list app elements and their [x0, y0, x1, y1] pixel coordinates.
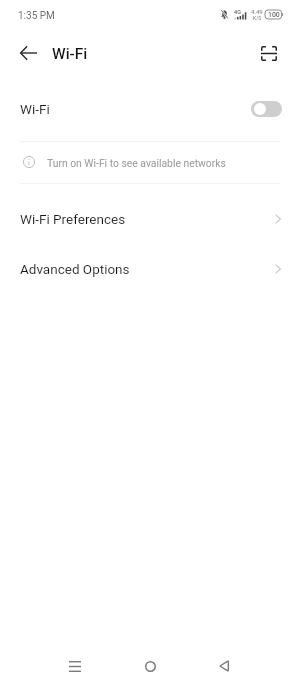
staticText: 100 — [268, 11, 280, 19]
staticText: Advanced Options — [20, 261, 130, 277]
button[interactable]: Back — [200, 642, 248, 683]
staticText: 4.49 — [251, 8, 263, 15]
button[interactable]: Back — [8, 33, 48, 73]
staticText: K/S — [253, 15, 262, 21]
button[interactable]: Wi-Fi — [0, 84, 300, 134]
staticText: Wi-Fi — [20, 101, 50, 117]
button[interactable]: Advanced Options — [0, 244, 300, 294]
button[interactable]: Scan QR code — [249, 33, 289, 73]
button[interactable]: Recent apps — [51, 642, 99, 683]
staticText: Turn on Wi-Fi to see available networks — [47, 157, 226, 169]
button[interactable]: Home — [126, 642, 174, 683]
staticText: 1:35 PM — [18, 10, 55, 22]
staticText: Wi-Fi — [52, 45, 88, 63]
staticText: 4G — [234, 9, 241, 16]
staticText: Wi-Fi Preferences — [20, 211, 126, 227]
button[interactable]: Wi-Fi Preferences — [0, 194, 300, 244]
